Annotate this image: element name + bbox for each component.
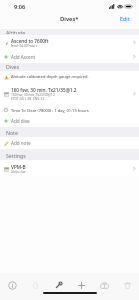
button[interactable]: Equipment [93,281,116,290]
button[interactable]: Tools [47,281,70,290]
button[interactable]: VPM-B [0,160,139,177]
staticText: VPM-B [11,164,26,170]
button[interactable]: Info [0,281,24,290]
button[interactable]: Edit [115,13,139,25]
staticText: 9:06 [14,3,26,11]
staticText: Altitude calibrated depth gauge required… [11,74,89,79]
staticText: Dives* [60,15,79,23]
button[interactable]: Time To Clear (78000) : 1 day, 01:15 hou… [0,105,139,115]
button[interactable]: Add [70,281,93,290]
staticText: Dives [6,63,20,70]
button[interactable]: Add Ascent [0,50,139,63]
button[interactable]: Delete [116,281,139,290]
staticText: Ascend to 7600ft [11,38,49,44]
button[interactable]: Add note [0,137,139,149]
staticText: Edit [120,15,130,22]
button[interactable]: Add dive [0,115,139,127]
button[interactable]: Gas mixes [24,281,47,290]
staticText: level: 04:00 hours [11,44,38,48]
staticText: Add note [11,140,31,146]
staticText: Add Ascent [11,54,36,60]
staticText: Altitude [6,29,26,34]
staticText: Add dive [11,118,30,124]
button[interactable]: Altitude calibrated depth gauge required… [0,71,139,82]
staticText: Settings [6,152,26,159]
staticText: Units: fsw [11,170,26,174]
staticText: 160 fsw, 30 min, Tx21/35@1.2 [11,87,77,93]
staticText: ETOT: 66 | 28 CNS: 32 [11,97,45,101]
staticText: 100 fsw, 30 min, Tx25/50@1.2 [11,93,56,97]
staticText: Time To Clear (78000) : 1 day, 01:15 hou… [11,108,89,113]
staticText: Note [6,129,18,136]
button[interactable]: 160 fsw, 30 min, Tx21/35@1.2 [0,82,139,105]
button[interactable]: Ascend to 7600ft [0,35,139,50]
